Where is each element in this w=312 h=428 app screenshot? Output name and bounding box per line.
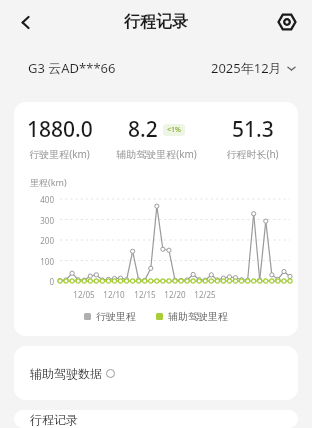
staticText: 1880.0	[27, 115, 93, 144]
staticText: 辅助驾驶里程(km)	[116, 147, 197, 161]
button[interactable]: 行程记录	[14, 410, 298, 428]
button[interactable]: Settings	[270, 5, 304, 39]
staticText: 0	[26, 276, 54, 287]
staticText: 400	[26, 194, 54, 205]
button[interactable]: Back	[8, 5, 42, 39]
staticText: 12/10	[100, 289, 128, 300]
staticText: 行驶里程	[96, 310, 136, 323]
staticText: 200	[26, 235, 54, 246]
staticText: 行程记录	[124, 12, 188, 32]
staticText: 12/05	[70, 289, 98, 300]
staticText: 8.2	[128, 115, 158, 144]
staticText: 里程(km)	[30, 176, 67, 188]
button[interactable]: 2025年12月	[211, 59, 296, 77]
staticText: 行程记录	[30, 412, 78, 427]
staticText: 100	[26, 256, 54, 267]
staticText: 51.3	[232, 115, 274, 144]
staticText: 12/15	[131, 289, 159, 300]
staticText: 12/25	[191, 289, 219, 300]
staticText: G3 云AD***66	[28, 59, 116, 77]
staticText: 辅助驾驶里程	[168, 310, 228, 323]
button[interactable]: 辅助驾驶数据	[14, 346, 298, 400]
staticText: <1%	[167, 125, 181, 135]
staticText: 12/20	[161, 289, 189, 300]
staticText: 2025年12月	[211, 59, 282, 77]
staticText: 辅助驾驶数据	[30, 366, 102, 381]
staticText: 行程时长(h)	[226, 147, 279, 161]
staticText: 300	[26, 215, 54, 226]
staticText: 行驶里程(km)	[29, 147, 90, 161]
